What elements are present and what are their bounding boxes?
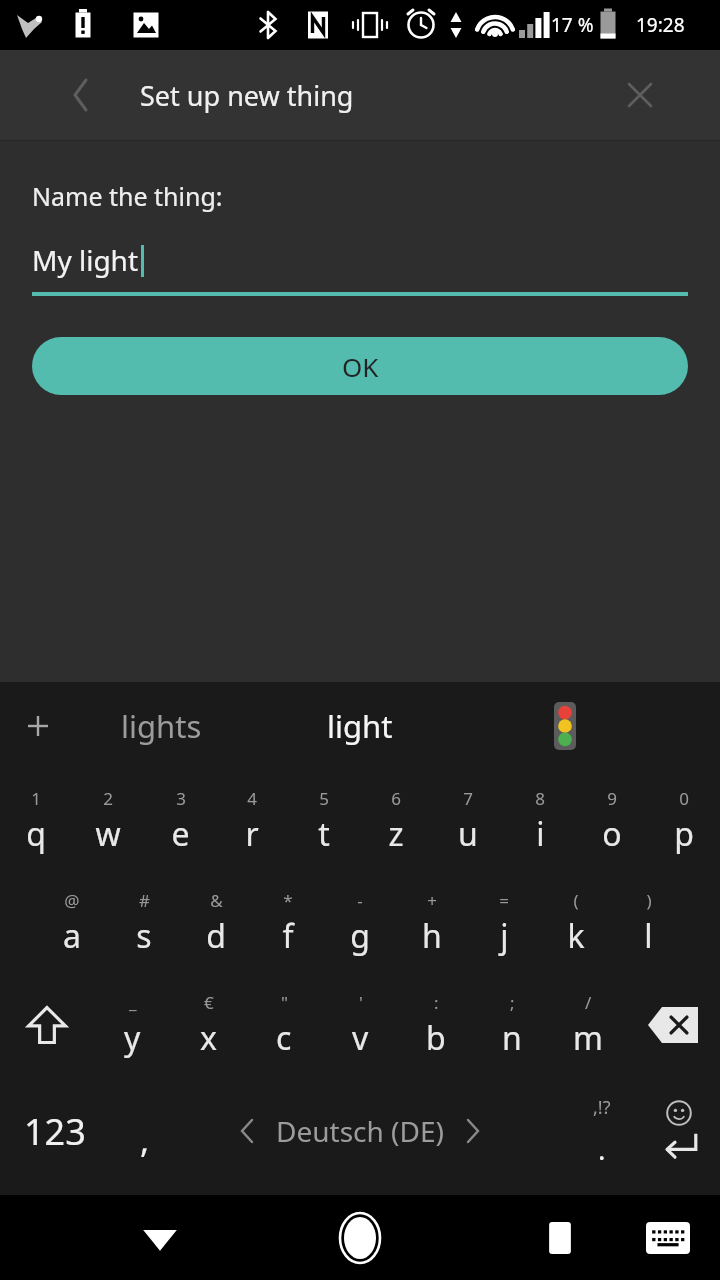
button[interactable]: )	[612, 872, 684, 974]
staticText: w	[95, 812, 121, 856]
staticText: _	[129, 991, 137, 1014]
button[interactable]: ;	[474, 974, 550, 1076]
staticText: =	[499, 889, 509, 912]
staticText: p	[674, 812, 694, 856]
button[interactable]: 1	[0, 770, 72, 872]
staticText: :	[434, 991, 439, 1014]
button[interactable]: #	[108, 872, 180, 974]
button[interactable]: ,	[110, 1076, 180, 1186]
button[interactable]: Enter	[638, 1076, 720, 1186]
button[interactable]: 9	[576, 770, 648, 872]
staticText: ,	[140, 1117, 150, 1163]
staticText: x	[200, 1016, 217, 1060]
staticText: OK	[342, 349, 379, 384]
button[interactable]: Hide keyboard	[120, 1198, 200, 1278]
button[interactable]: Deutsch (DE)	[190, 1076, 530, 1186]
staticText: My light	[32, 241, 139, 279]
button[interactable]: Traffic light emoji suggestion	[530, 682, 600, 770]
staticText: /	[585, 991, 592, 1014]
staticText: j	[500, 914, 509, 958]
staticText: d	[206, 914, 226, 958]
button[interactable]: Back	[52, 67, 108, 123]
staticText: v	[352, 1016, 369, 1060]
staticText: i	[536, 812, 545, 856]
staticText: 17 %	[551, 12, 594, 38]
staticText: t	[318, 812, 330, 856]
button[interactable]: Recents	[520, 1198, 600, 1278]
staticText: 6	[391, 787, 401, 810]
staticText: m	[573, 1016, 603, 1060]
staticText: n	[502, 1016, 522, 1060]
staticText: 9	[607, 787, 617, 810]
button[interactable]: @	[36, 872, 108, 974]
staticText: 7	[463, 787, 473, 810]
staticText: 5	[319, 787, 329, 810]
button[interactable]: Shift	[0, 974, 94, 1076]
staticText: c	[276, 1016, 292, 1060]
button[interactable]: light	[275, 682, 445, 770]
button[interactable]: Add to dictionary	[12, 700, 64, 752]
button[interactable]: (	[540, 872, 612, 974]
button[interactable]: 8	[504, 770, 576, 872]
button[interactable]: &	[180, 872, 252, 974]
staticText: .	[598, 1130, 606, 1168]
button[interactable]: 5	[288, 770, 360, 872]
staticText: f	[282, 914, 294, 958]
button[interactable]: €	[170, 974, 246, 1076]
staticText: Deutsch (DE)	[276, 1112, 444, 1150]
button[interactable]: =	[468, 872, 540, 974]
staticText: k	[567, 914, 585, 958]
staticText: -	[357, 889, 363, 912]
staticText: 1	[31, 787, 41, 810]
staticText: e	[171, 812, 190, 856]
staticText: *	[283, 889, 293, 912]
button[interactable]: "	[246, 974, 322, 1076]
staticText: u	[458, 812, 478, 856]
staticText: "	[281, 991, 288, 1014]
button[interactable]: 0	[648, 770, 720, 872]
staticText: b	[426, 1016, 446, 1060]
staticText: q	[26, 812, 46, 856]
button[interactable]: Switch keyboard	[628, 1198, 708, 1278]
staticText: (	[573, 889, 579, 912]
button[interactable]: Close	[612, 67, 668, 123]
staticText: a	[63, 914, 81, 958]
button[interactable]: Backspace	[626, 974, 720, 1076]
staticText: r	[245, 812, 259, 856]
button[interactable]: *	[252, 872, 324, 974]
button[interactable]: '	[322, 974, 398, 1076]
button[interactable]: My light	[32, 241, 688, 279]
staticText: lights	[121, 705, 202, 747]
button[interactable]: _	[94, 974, 170, 1076]
button[interactable]: /	[550, 974, 626, 1076]
staticText: ;	[510, 991, 515, 1014]
staticText: h	[422, 914, 442, 958]
staticText: l	[644, 914, 653, 958]
button[interactable]: 7	[432, 770, 504, 872]
staticText: 4	[247, 787, 257, 810]
staticText: y	[124, 1016, 141, 1060]
button[interactable]: Home	[320, 1198, 400, 1278]
staticText: Set up new thing	[140, 77, 354, 114]
button[interactable]: 2	[72, 770, 144, 872]
button[interactable]: 4	[216, 770, 288, 872]
staticText: €	[204, 991, 214, 1014]
button[interactable]: :	[398, 974, 474, 1076]
staticText: 19:28	[636, 12, 685, 38]
staticText: )	[646, 889, 652, 912]
button[interactable]: OK	[32, 337, 688, 395]
staticText: 123	[24, 1107, 86, 1156]
button[interactable]: -	[324, 872, 396, 974]
button[interactable]: ,!?	[566, 1076, 638, 1186]
staticText: '	[359, 991, 363, 1014]
button[interactable]: 123	[0, 1076, 110, 1186]
staticText: light	[327, 705, 393, 747]
button[interactable]: 6	[360, 770, 432, 872]
button[interactable]: lights	[86, 682, 236, 770]
button[interactable]: 3	[144, 770, 216, 872]
staticText: 8	[535, 787, 545, 810]
button[interactable]: +	[396, 872, 468, 974]
staticText: @	[64, 889, 80, 912]
staticText: #	[139, 889, 150, 912]
staticText: ,!?	[593, 1095, 611, 1120]
